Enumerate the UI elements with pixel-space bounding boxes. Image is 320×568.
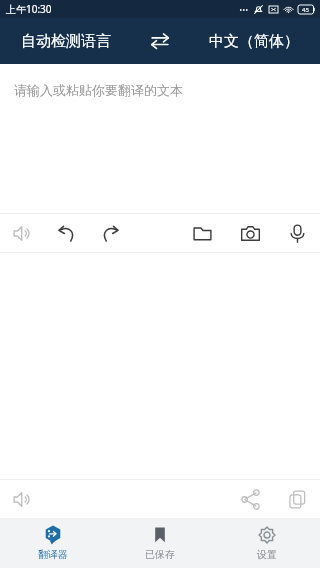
button[interactable]: Share: [226, 480, 274, 518]
button[interactable]: 自动检测语言: [0, 18, 132, 64]
button[interactable]: Listen: [0, 214, 44, 252]
button[interactable]: Copy: [274, 480, 320, 518]
staticText: 45: [302, 6, 309, 14]
button[interactable]: Open document: [178, 214, 226, 252]
staticText: 设置: [257, 548, 277, 561]
button[interactable]: Swap languages: [132, 18, 188, 64]
staticText: 中文（简体）: [209, 32, 299, 51]
button[interactable]: 已保存: [106, 518, 213, 568]
staticText: 上午10:30: [6, 2, 52, 16]
button[interactable]: 请输入或粘贴你要翻译的文本: [0, 64, 320, 213]
staticText: 自动检测语言: [21, 32, 111, 51]
button[interactable]: 设置: [213, 518, 320, 568]
button[interactable]: 中文（简体）: [188, 18, 320, 64]
button[interactable]: Undo: [44, 214, 88, 252]
button[interactable]: 翻译器: [0, 518, 106, 568]
staticText: 已保存: [145, 548, 175, 561]
staticText: 请输入或粘贴你要翻译的文本: [14, 82, 183, 98]
button[interactable]: Redo: [88, 214, 132, 252]
staticText: 翻译器: [38, 548, 68, 561]
button[interactable]: Voice input: [274, 214, 320, 252]
button[interactable]: Listen translation: [0, 480, 44, 518]
button[interactable]: Camera: [226, 214, 274, 252]
